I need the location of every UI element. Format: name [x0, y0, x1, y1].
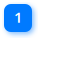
button[interactable]: 1	[4, 4, 32, 32]
staticText: 1	[14, 7, 22, 27]
